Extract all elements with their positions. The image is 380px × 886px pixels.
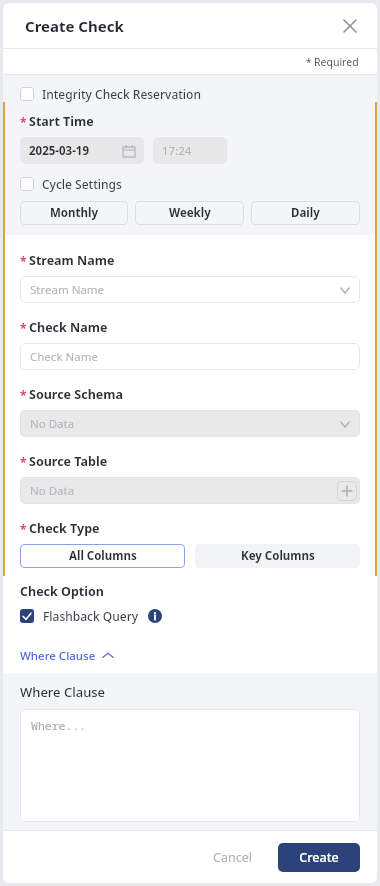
staticText: Create Check [25, 16, 124, 36]
button[interactable]: 17:24 [153, 137, 227, 164]
staticText: Key Columns [241, 548, 315, 564]
staticText: Check Name [29, 319, 108, 336]
button[interactable]: Monthly [20, 201, 128, 225]
staticText: All Columns [69, 548, 137, 564]
staticText: * [20, 253, 27, 269]
button[interactable]: 2025-03-19 [20, 137, 144, 164]
staticText: Where Clause [20, 683, 106, 701]
staticText: * [20, 521, 27, 537]
staticText: No Data [30, 483, 75, 499]
button[interactable]: Flashback Query info [148, 609, 162, 623]
button[interactable]: Weekly [135, 201, 244, 225]
staticText: Check Option [20, 583, 104, 600]
staticText: No Data [30, 416, 75, 432]
staticText: Cancel [213, 849, 252, 866]
staticText: Required [314, 55, 359, 69]
button[interactable] [20, 87, 34, 101]
staticText: Create [299, 849, 339, 866]
staticText: Start Time [29, 113, 94, 130]
button[interactable]: Stream Name [20, 276, 360, 303]
button[interactable]: No Data [20, 410, 360, 437]
staticText: Check Name [30, 349, 98, 365]
staticText: Where Clause [20, 648, 96, 664]
staticText: Source Schema [29, 386, 123, 403]
staticText: Weekly [169, 205, 211, 221]
staticText: 17:24 [162, 143, 192, 159]
staticText: Daily [291, 205, 320, 221]
staticText: Check Type [29, 520, 100, 537]
button[interactable]: No Data [20, 477, 360, 504]
button[interactable]: Create [278, 843, 360, 872]
button[interactable]: Daily [251, 201, 360, 225]
staticText: Stream Name [30, 282, 105, 298]
button[interactable] [20, 177, 34, 191]
button[interactable]: Check Name [20, 343, 360, 370]
staticText: * [20, 320, 27, 336]
button[interactable]: Close [337, 13, 363, 39]
staticText: Source Table [29, 453, 108, 470]
staticText: Monthly [50, 205, 98, 221]
staticText: * [306, 55, 312, 69]
button[interactable]: Key Columns [195, 544, 360, 568]
staticText: 2025-03-19 [29, 143, 89, 159]
button[interactable]: Where... [20, 709, 360, 822]
button[interactable]: Cancel [199, 842, 266, 873]
staticText: Where... [31, 718, 87, 734]
staticText: Integrity Check Reservation [42, 86, 201, 102]
staticText: Cycle Settings [42, 176, 122, 192]
staticText: Flashback Query [43, 608, 139, 624]
staticText: * [20, 114, 27, 130]
button[interactable]: All Columns [20, 544, 185, 568]
staticText: * [20, 387, 27, 403]
button[interactable] [20, 609, 34, 623]
button[interactable]: Where Clause [20, 648, 113, 664]
staticText: Stream Name [29, 252, 115, 269]
button[interactable]: Add source table [337, 481, 357, 501]
staticText: * [20, 454, 27, 470]
